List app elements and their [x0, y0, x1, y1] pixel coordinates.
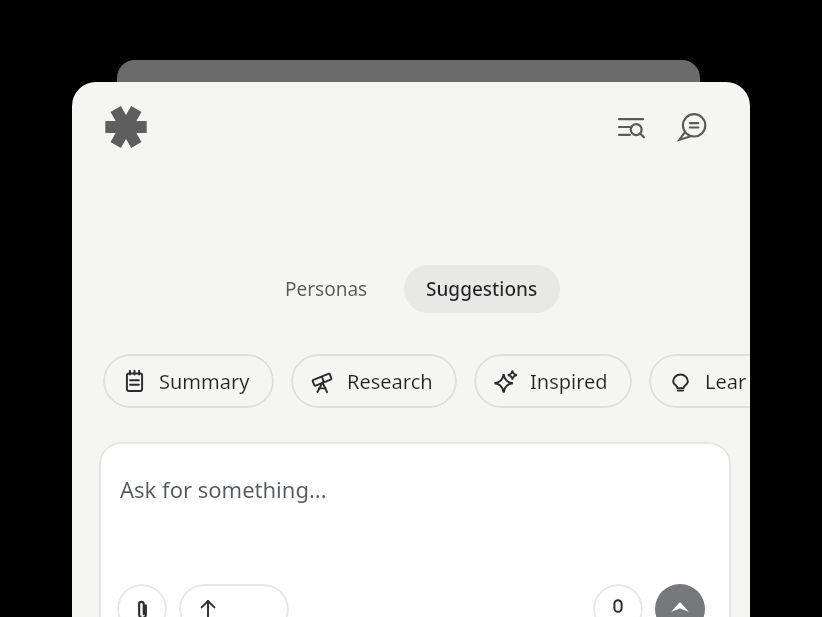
staticText: Research [347, 368, 433, 395]
button[interactable]: New chat [672, 106, 714, 148]
button[interactable]: Learn [649, 354, 750, 408]
button[interactable]: Inspired [474, 354, 632, 408]
button[interactable]: Personas [263, 265, 390, 313]
button[interactable]: App logo [102, 103, 150, 151]
staticText: Summary [159, 368, 250, 395]
staticText: Learn [705, 368, 750, 395]
staticText: Suggestions [426, 276, 538, 302]
staticText: Personas [285, 276, 368, 302]
staticText: Inspired [530, 368, 608, 395]
button[interactable]: Upgrade [179, 584, 289, 617]
button[interactable]: Attach file [117, 584, 167, 617]
button[interactable]: Send [655, 584, 705, 617]
button[interactable]: Summary [103, 354, 274, 408]
button[interactable]: Research [291, 354, 457, 408]
staticText: Ask for something... [120, 474, 327, 504]
button[interactable]: Search conversations [610, 106, 652, 148]
button[interactable]: Ask for something... [99, 442, 731, 617]
button[interactable]: Voice input [593, 584, 643, 617]
button[interactable]: Suggestions [404, 265, 560, 313]
